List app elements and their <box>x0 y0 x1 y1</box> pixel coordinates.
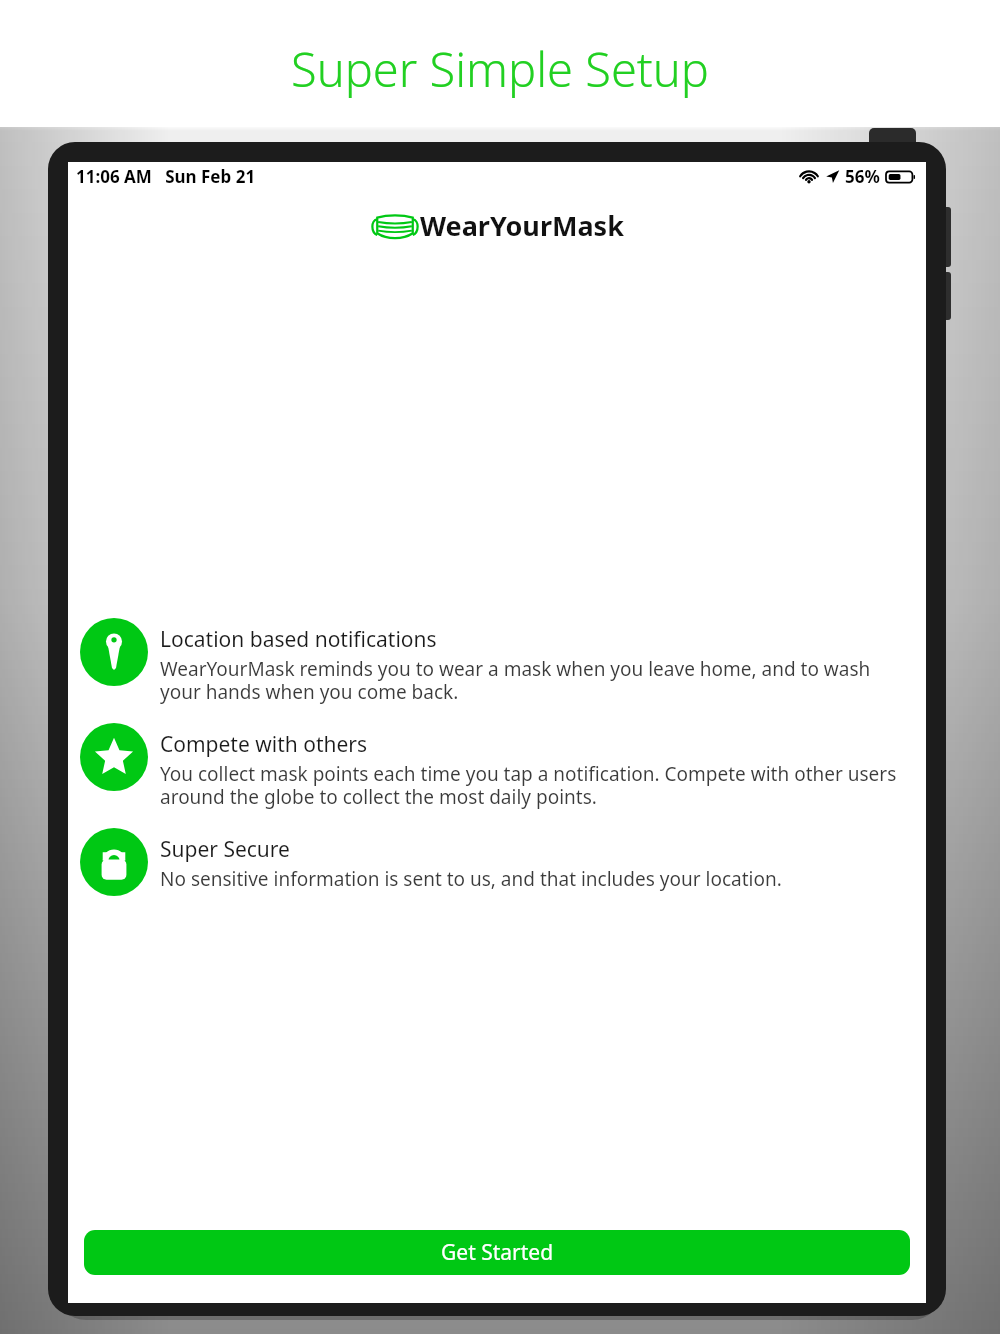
staticText: Get Started <box>441 1238 554 1267</box>
staticText: WearYourMask <box>420 207 624 244</box>
other: Location <box>80 618 148 686</box>
staticText: No sensitive information is sent to us, … <box>160 866 782 892</box>
staticText: 56% <box>845 165 880 188</box>
staticText: Super Simple Setup <box>0 37 1000 101</box>
staticText: Compete with others <box>160 730 368 759</box>
other: Compete <box>80 723 148 791</box>
button[interactable]: Compete <box>80 723 912 810</box>
staticText: 11:06 AM Sun Feb 21 <box>76 165 256 188</box>
button[interactable]: Location <box>80 618 912 705</box>
other: Secure <box>80 828 148 896</box>
staticText: WearYourMask reminds you to wear a mask … <box>160 656 912 705</box>
staticText: Location based notifications <box>160 625 437 654</box>
staticText: Super Secure <box>160 835 290 864</box>
staticText: You collect mask points each time you ta… <box>160 761 912 810</box>
button[interactable]: Secure <box>80 828 912 896</box>
button[interactable]: Get Started <box>84 1230 910 1275</box>
